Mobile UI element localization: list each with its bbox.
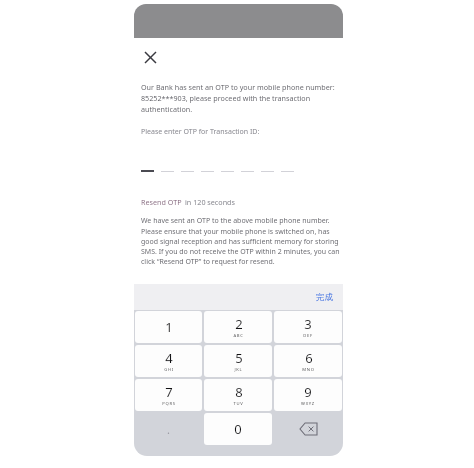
staticText: PQRS <box>162 401 176 407</box>
staticText: WXYZ <box>301 401 315 407</box>
button[interactable]: 0 <box>204 413 272 445</box>
button[interactable]: 8 <box>204 379 272 411</box>
button[interactable]: 3 <box>274 311 342 343</box>
staticText: 0 <box>234 420 242 438</box>
staticText: 完成 <box>316 292 333 303</box>
button[interactable]: 9 <box>274 379 342 411</box>
button[interactable]: 7 <box>135 379 202 411</box>
staticText: 4 <box>165 349 173 367</box>
staticText: 8 <box>235 383 243 401</box>
staticText: Please enter OTP for Transaction ID: <box>141 127 260 137</box>
button[interactable]: Resend OTP <box>141 197 235 207</box>
staticText: TUV <box>233 401 244 407</box>
staticText: 7 <box>165 383 173 401</box>
button[interactable]: Backspace <box>274 413 342 445</box>
button[interactable]: 完成 <box>312 290 337 305</box>
staticText: Resend OTP <box>141 197 182 207</box>
staticText: 9 <box>304 383 312 401</box>
staticText: Our Bank has sent an OTP to your mobile … <box>141 82 341 114</box>
staticText: . <box>167 422 170 437</box>
staticText: ABC <box>233 333 244 339</box>
staticText: 1 <box>165 318 173 336</box>
staticText: MNO <box>302 367 315 373</box>
button[interactable]: 5 <box>204 345 272 377</box>
button[interactable]: 2 <box>204 311 272 343</box>
staticText: 3 <box>304 315 312 333</box>
staticText: in 120 seconds <box>185 197 235 207</box>
button[interactable]: 1 <box>135 311 202 343</box>
button[interactable]: 6 <box>274 345 342 377</box>
staticText: JKL <box>234 367 243 373</box>
staticText: 5 <box>235 349 243 367</box>
button[interactable]: 4 <box>135 345 202 377</box>
staticText: We have sent an OTP to the above mobile … <box>141 216 343 266</box>
staticText: DEF <box>303 333 313 339</box>
staticText: GHI <box>164 367 174 373</box>
button[interactable]: Close <box>139 46 161 68</box>
staticText: 2 <box>235 315 243 333</box>
button[interactable] <box>141 170 301 172</box>
staticText: 6 <box>305 349 313 367</box>
